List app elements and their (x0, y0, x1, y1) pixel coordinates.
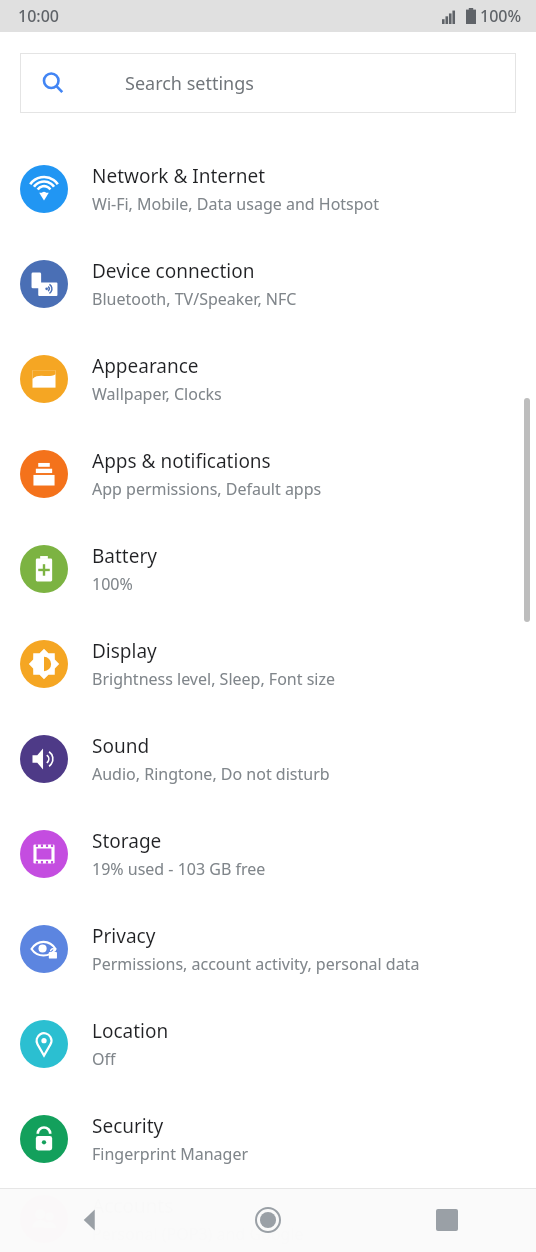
staticText: Personal (POP3) and Google (92, 1223, 304, 1245)
other: Search (42, 72, 64, 94)
staticText: Audio, Ringtone, Do not disturb (92, 763, 330, 785)
button[interactable]: Recents (357, 1188, 536, 1252)
staticText: Bluetooth, TV/Speaker, NFC (92, 288, 297, 310)
staticText: Sound (92, 733, 150, 759)
staticText: Off (92, 1048, 116, 1070)
staticText: Apps & notifications (92, 448, 271, 474)
staticText: Appearance (92, 353, 199, 379)
staticText: Fingerprint Manager (92, 1143, 249, 1165)
button[interactable]: Appearance (0, 331, 536, 426)
staticText: Privacy (92, 923, 156, 949)
button[interactable]: Device connection (0, 236, 536, 331)
button[interactable]: Search (20, 53, 516, 113)
button[interactable]: Home (178, 1188, 357, 1252)
staticText: Storage (92, 828, 162, 854)
staticText: Brightness level, Sleep, Font size (92, 668, 335, 690)
staticText: Device connection (92, 258, 255, 284)
staticText: Location (92, 1018, 169, 1044)
button[interactable]: Network & Internet (0, 141, 536, 236)
staticText: Search settings (125, 71, 254, 96)
staticText: 100% (92, 573, 133, 595)
button[interactable]: Display (0, 616, 536, 711)
staticText: Permissions, account activity, personal … (92, 953, 420, 975)
button[interactable]: Accounts (0, 1186, 536, 1252)
staticText: 10:00 (18, 5, 59, 27)
button[interactable]: Storage (0, 806, 536, 901)
button[interactable]: Privacy (0, 901, 536, 996)
staticText: Network & Internet (92, 163, 266, 189)
staticText: Wi-Fi, Mobile, Data usage and Hotspot (92, 193, 380, 215)
staticText: Battery (92, 543, 157, 569)
button[interactable]: Sound (0, 711, 536, 806)
staticText: Display (92, 638, 157, 664)
staticText: 19% used - 103 GB free (92, 858, 266, 880)
staticText: Accounts (92, 1193, 174, 1219)
button[interactable]: Back (0, 1188, 178, 1252)
staticText: App permissions, Default apps (92, 478, 322, 500)
button[interactable]: Battery (0, 521, 536, 616)
staticText: Security (92, 1113, 164, 1139)
button[interactable]: Location (0, 996, 536, 1091)
staticText: Wallpaper, Clocks (92, 383, 222, 405)
button[interactable]: Security (0, 1091, 536, 1186)
button[interactable]: Apps & notifications (0, 426, 536, 521)
staticText: 100% (480, 5, 522, 27)
